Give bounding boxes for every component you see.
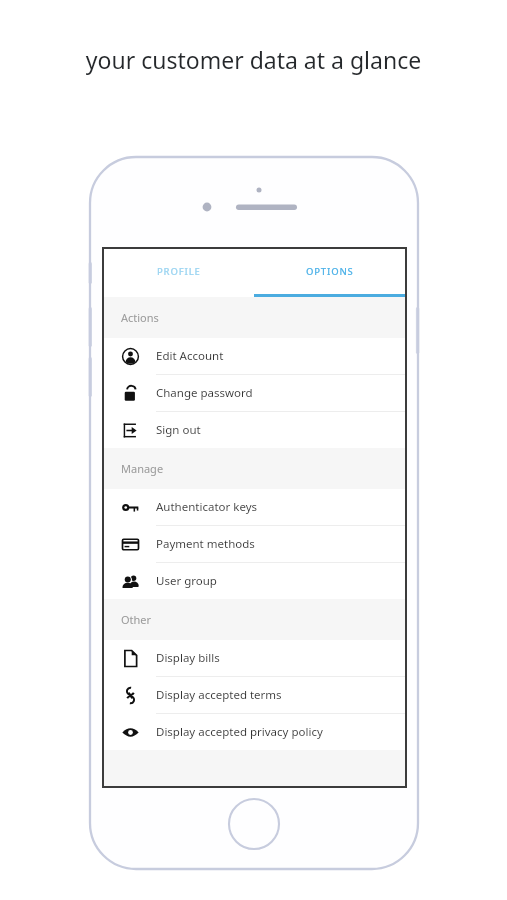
button[interactable]: Display bills <box>104 640 405 677</box>
staticText: your customer data at a glance <box>0 44 507 75</box>
staticText: Edit Account <box>156 348 224 364</box>
staticText: OPTIONS <box>306 265 354 278</box>
staticText: Display accepted privacy policy <box>156 724 323 740</box>
button[interactable]: Authenticator keys <box>104 489 405 526</box>
button[interactable]: Display accepted terms <box>104 677 405 714</box>
staticText: Other <box>121 612 152 627</box>
button[interactable]: Sign out <box>104 412 405 448</box>
staticText: Sign out <box>156 422 201 438</box>
button[interactable]: PROFILE <box>104 249 254 294</box>
staticText: Display accepted terms <box>156 687 282 703</box>
button[interactable]: OPTIONS <box>254 249 405 294</box>
staticText: Actions <box>121 310 159 325</box>
staticText: Manage <box>121 461 164 476</box>
staticText: Display bills <box>156 650 220 666</box>
staticText: Change password <box>156 385 253 401</box>
button[interactable]: Display accepted privacy policy <box>104 714 405 750</box>
button[interactable]: Payment methods <box>104 526 405 563</box>
button[interactable]: User group <box>104 563 405 599</box>
staticText: Payment methods <box>156 536 255 552</box>
button[interactable]: Edit Account <box>104 338 405 375</box>
button[interactable]: Change password <box>104 375 405 412</box>
staticText: User group <box>156 573 217 589</box>
staticText: Authenticator keys <box>156 499 258 515</box>
staticText: PROFILE <box>157 265 201 278</box>
